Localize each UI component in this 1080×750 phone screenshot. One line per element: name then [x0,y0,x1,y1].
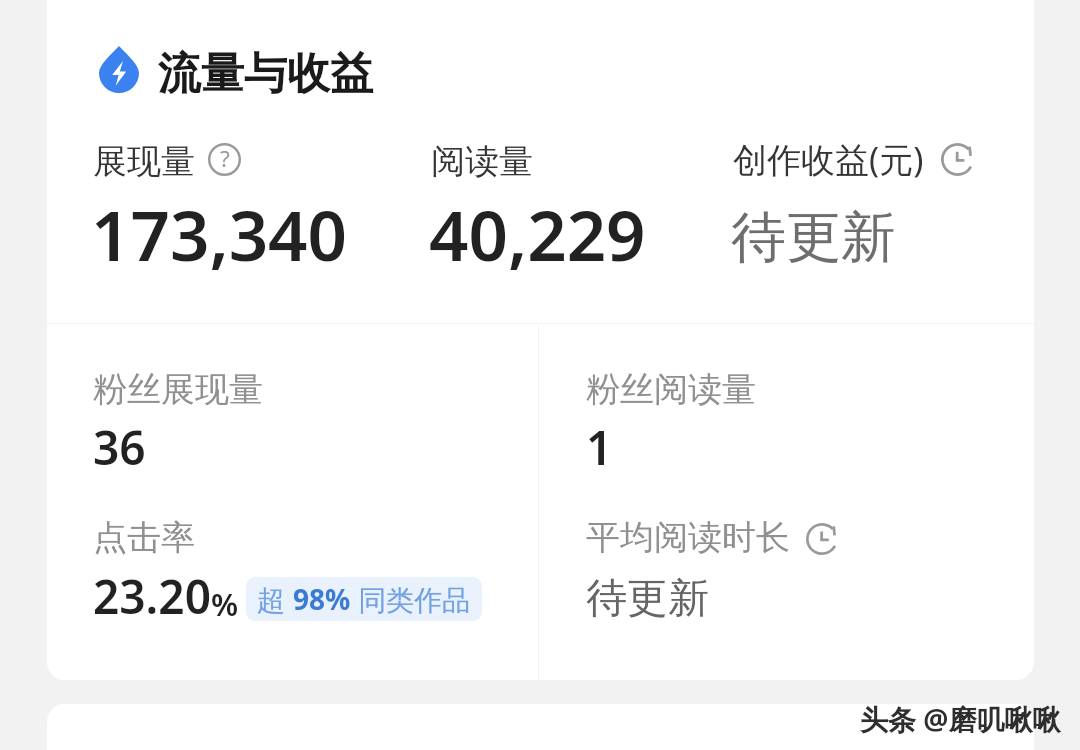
staticText: 头条 @磨叽啾啾 [860,700,1061,738]
staticText: 点击率 [93,516,195,559]
staticText: 1 [586,416,613,479]
button[interactable]: 粉丝展现量 36 [47,327,538,503]
staticText: 粉丝展现量 [93,368,263,411]
button[interactable]: 点击率 23.20% [47,503,538,680]
button[interactable]: Help [208,143,241,176]
staticText: 173,340 [91,187,348,281]
button[interactable]: 超 [246,577,482,621]
button[interactable]: 流量与收益 [92,38,392,100]
staticText: 流量与收益 [158,47,373,101]
staticText: 同类作品 [351,580,471,618]
button[interactable]: 粉丝阅读量 1 [539,327,1034,503]
staticText: 23.20 [93,565,211,628]
staticText: 超 [257,580,293,618]
staticText: 阅读量 [431,140,533,183]
staticText: 展现量 [93,140,195,183]
staticText: 36 [93,416,146,479]
staticText: 平均阅读时长 [586,516,790,559]
other: Average read duration info [806,523,838,555]
other: Pending update [941,143,974,176]
staticText: ? [220,143,230,174]
staticText: 创作收益(元) [733,136,924,182]
staticText: 待更新 [586,573,709,625]
staticText: 98% [293,580,351,618]
button[interactable]: 展现量 173,340 [73,125,393,300]
button[interactable] [47,704,1034,750]
staticText: 待更新 [731,203,896,272]
staticText: 40,229 [429,187,646,281]
staticText: 粉丝阅读量 [586,368,756,411]
button[interactable]: 阅读量 40,229 [411,125,691,300]
button[interactable]: 创作收益(元) 待更新 [713,125,993,300]
staticText: % [211,583,239,625]
button[interactable]: 平均阅读时长 待更新 [539,503,1034,680]
